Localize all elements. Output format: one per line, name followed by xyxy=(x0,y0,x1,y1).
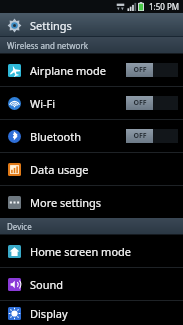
button[interactable]: Airplane mode xyxy=(0,54,183,86)
staticText: OFF xyxy=(133,131,147,141)
button[interactable]: Sound xyxy=(0,268,183,300)
staticText: More settings xyxy=(30,195,102,210)
staticText: Sound xyxy=(30,277,64,292)
button[interactable]: Bluetooth xyxy=(0,120,183,152)
staticText: Device xyxy=(7,221,32,232)
staticText: Airplane mode xyxy=(30,63,106,78)
staticText: Display xyxy=(30,306,68,321)
staticText: Data usage xyxy=(30,162,89,177)
button[interactable]: Display xyxy=(0,301,183,325)
button[interactable]: Home screen mode xyxy=(0,235,183,267)
staticText: Wi-Fi xyxy=(30,96,56,111)
staticText: Settings xyxy=(30,18,72,33)
staticText: OFF xyxy=(133,65,147,75)
staticText: OFF xyxy=(133,98,147,108)
button[interactable]: Toggle off xyxy=(126,129,178,143)
button[interactable]: Data usage xyxy=(0,153,183,185)
button[interactable]: Toggle off xyxy=(126,63,178,77)
button[interactable]: Toggle off xyxy=(126,96,178,110)
button[interactable]: More settings xyxy=(0,186,183,218)
staticText: 1:50 PM xyxy=(149,1,180,12)
staticText: Wireless and network xyxy=(7,40,88,51)
button[interactable]: Wi-Fi xyxy=(0,87,183,119)
staticText: Home screen mode xyxy=(30,244,132,259)
button[interactable]: Settings xyxy=(0,13,183,37)
staticText: Bluetooth xyxy=(30,129,82,144)
